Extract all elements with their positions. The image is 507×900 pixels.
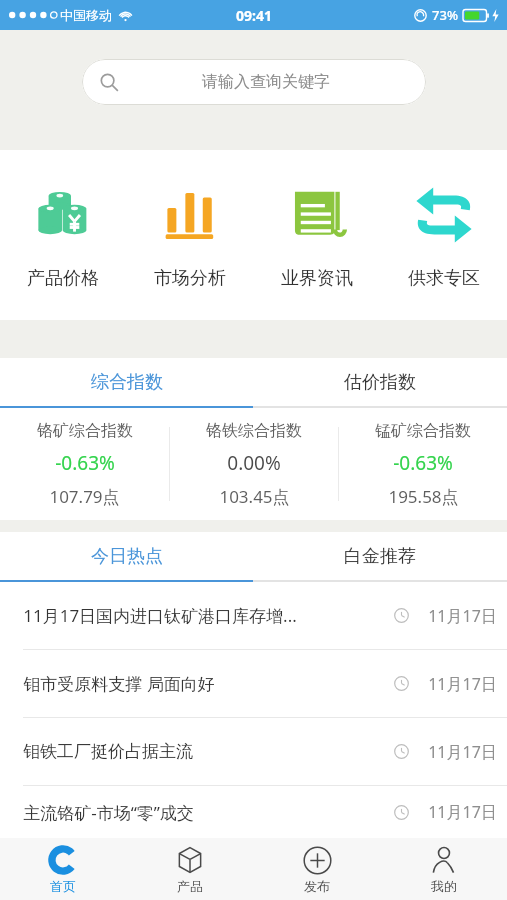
button[interactable]: 铬铁综合指数 xyxy=(170,408,338,520)
button[interactable]: 钼铁工厂挺价占据主流 xyxy=(0,718,507,785)
staticText: 11月17日 xyxy=(428,801,497,823)
staticText: 首页 xyxy=(50,878,76,894)
staticText: 中国移动 xyxy=(60,7,112,23)
staticText: 估价指数 xyxy=(344,371,416,394)
staticText: 业界资讯 xyxy=(281,267,353,290)
staticText: 产品 xyxy=(177,878,203,894)
staticText: 73% xyxy=(432,6,458,24)
button[interactable]: 市场分析 xyxy=(126,150,253,320)
button[interactable]: 综合指数 xyxy=(0,358,253,406)
other: 首页 xyxy=(48,845,78,875)
button[interactable]: 今日热点 xyxy=(0,532,253,580)
button[interactable]: 首页 xyxy=(0,838,126,900)
button[interactable]: 锰矿综合指数 xyxy=(339,408,507,520)
staticText: 产品价格 xyxy=(27,267,99,290)
button[interactable]: 估价指数 xyxy=(253,358,507,406)
staticText: 195.58点 xyxy=(388,485,459,508)
button[interactable]: 铬矿综合指数 xyxy=(0,408,169,520)
other: 我的 xyxy=(430,846,458,874)
button[interactable]: 发布 xyxy=(253,838,380,900)
button[interactable]: 供求专区 xyxy=(380,150,507,320)
button[interactable]: 业界资讯 xyxy=(253,150,380,320)
staticText: 钼市受原料支撑 局面向好 xyxy=(23,672,215,695)
staticText: 11月17日 xyxy=(428,741,497,763)
staticText: 09:41 xyxy=(236,6,272,25)
other: 发布 xyxy=(303,846,332,875)
staticText: 主流铬矿-市场“零”成交 xyxy=(23,801,194,824)
staticText: -0.63% xyxy=(55,450,115,476)
staticText: 11月17日 xyxy=(428,605,497,627)
button[interactable]: 请输入查询关键字 xyxy=(82,59,426,105)
staticText: 钼铁工厂挺价占据主流 xyxy=(23,741,193,762)
staticText: 供求专区 xyxy=(408,267,480,290)
staticText: 11月17日国内进口钛矿港口库存增... xyxy=(23,604,297,627)
staticText: 107.79点 xyxy=(49,485,120,508)
staticText: 白金推荐 xyxy=(344,545,416,568)
button[interactable]: 主流铬矿-市场“零”成交 xyxy=(0,786,507,838)
staticText: 市场分析 xyxy=(154,267,226,290)
other: 产品 xyxy=(176,846,204,874)
staticText: 铬铁综合指数 xyxy=(206,421,302,441)
button[interactable]: 钼市受原料支撑 局面向好 xyxy=(0,650,507,717)
staticText: 今日热点 xyxy=(91,545,163,568)
staticText: 请输入查询关键字 xyxy=(202,72,330,92)
staticText: 发布 xyxy=(304,878,330,894)
staticText: 铬矿综合指数 xyxy=(37,421,133,441)
staticText: 我的 xyxy=(431,878,457,894)
staticText: 11月17日 xyxy=(428,673,497,695)
button[interactable]: 我的 xyxy=(380,838,507,900)
staticText: -0.63% xyxy=(393,450,453,476)
button[interactable]: 白金推荐 xyxy=(253,532,507,580)
button[interactable]: 11月17日国内进口钛矿港口库存增... xyxy=(0,582,507,649)
staticText: 0.00% xyxy=(227,450,281,476)
staticText: 综合指数 xyxy=(91,371,163,394)
button[interactable]: 产品价格 xyxy=(0,150,126,320)
button[interactable]: 产品 xyxy=(126,838,253,900)
staticText: 锰矿综合指数 xyxy=(375,421,471,441)
staticText: 103.45点 xyxy=(219,485,290,508)
